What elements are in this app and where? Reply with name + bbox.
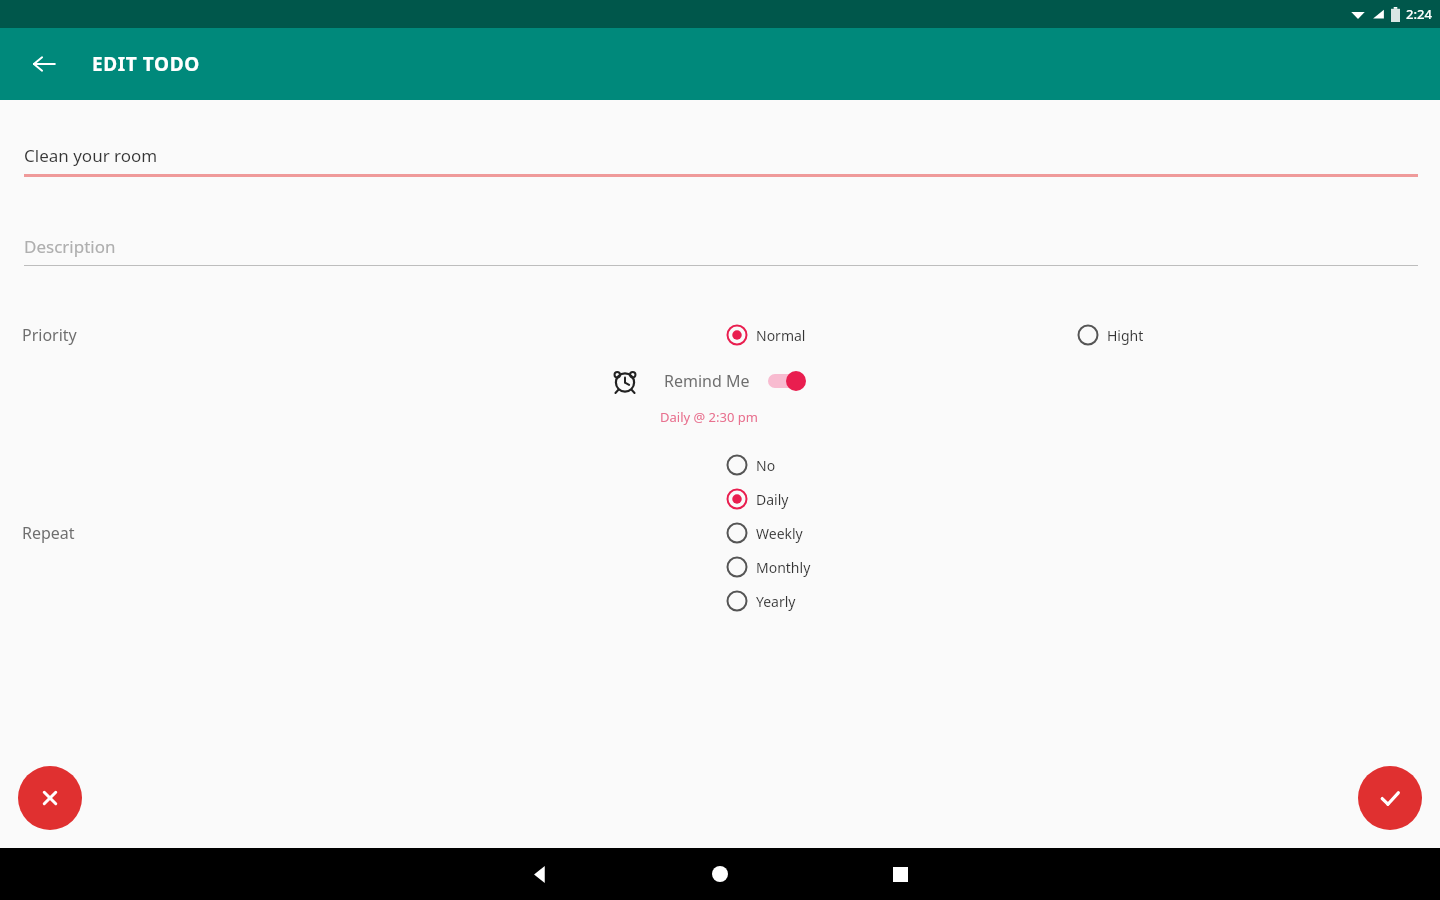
- staticText: Hight: [1107, 326, 1144, 345]
- staticText: Clean your room: [24, 144, 158, 167]
- button[interactable]: Back: [520, 854, 560, 894]
- button[interactable]: Yearly: [726, 584, 796, 618]
- button[interactable]: Weekly: [726, 516, 803, 550]
- button[interactable]: Normal: [726, 324, 806, 346]
- staticText: 2:24: [1406, 5, 1432, 23]
- button[interactable]: Yearly: [726, 590, 796, 612]
- button[interactable]: Home: [700, 854, 740, 894]
- staticText: Monthly: [756, 558, 811, 577]
- button[interactable]: Monthly: [726, 556, 811, 578]
- button[interactable]: Recents: [880, 854, 920, 894]
- staticText: Daily: [756, 490, 789, 509]
- button[interactable]: Daily: [726, 488, 789, 510]
- staticText: Normal: [756, 326, 806, 345]
- button[interactable]: No: [726, 448, 776, 482]
- button[interactable]: Back: [24, 44, 64, 84]
- button[interactable]: Hight: [1077, 324, 1144, 346]
- staticText: Yearly: [756, 592, 796, 611]
- staticText: Remind Me: [664, 370, 750, 392]
- button[interactable]: Remind Me toggle: [766, 368, 812, 394]
- button[interactable]: Weekly: [726, 522, 803, 544]
- button[interactable]: Daily: [726, 482, 789, 516]
- staticText: Priority: [22, 324, 77, 346]
- staticText: Description: [24, 235, 116, 258]
- staticText: Repeat: [22, 522, 75, 544]
- staticText: Weekly: [756, 524, 803, 543]
- button[interactable]: Cancel: [18, 766, 82, 830]
- staticText: EDIT TODO: [92, 51, 200, 77]
- staticText: Daily @ 2:30 pm: [660, 408, 758, 426]
- button[interactable]: Save: [1358, 766, 1422, 830]
- button[interactable]: Remind Me: [612, 368, 812, 394]
- button[interactable]: Monthly: [726, 550, 811, 584]
- staticText: No: [756, 456, 776, 475]
- button[interactable]: No: [726, 454, 776, 476]
